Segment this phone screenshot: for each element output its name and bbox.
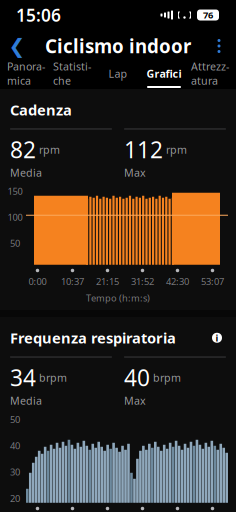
button[interactable]: Informazioni [208, 329, 226, 347]
button[interactable]: Lap [95, 63, 141, 88]
staticText: 40 [10, 439, 20, 452]
staticText: 150 [7, 185, 22, 197]
staticText: ❮ [8, 35, 25, 57]
staticText: Statistiche [53, 59, 91, 88]
staticText: Media [10, 166, 42, 180]
staticText: 100 [7, 211, 22, 223]
button[interactable]: Panoramica [3, 63, 49, 88]
staticText: Media [10, 394, 42, 408]
staticText: 21:15 [96, 275, 119, 288]
staticText: 50 [10, 413, 20, 425]
button[interactable]: Indietro [0, 30, 34, 62]
button[interactable]: Grafici [141, 63, 187, 88]
staticText: Panoramica [7, 59, 45, 88]
staticText: Max [124, 394, 146, 408]
staticText: brpm [153, 370, 181, 385]
staticText: rpm [166, 142, 187, 157]
staticText: rpm [39, 142, 60, 157]
staticText: 30 [10, 466, 20, 478]
button[interactable]: Attrezzatura [187, 63, 233, 88]
staticText: Max [124, 166, 146, 180]
staticText: i [215, 332, 218, 344]
staticText: 76 [203, 9, 213, 21]
staticText: Attrezzatura [191, 59, 229, 88]
staticText: 112 [124, 134, 163, 165]
staticText: brpm [39, 370, 67, 385]
staticText: 31:52 [131, 275, 154, 288]
staticText: 34 [10, 362, 36, 393]
button[interactable]: Statistiche [49, 63, 95, 88]
staticText: 82 [10, 134, 36, 165]
staticText: Ciclismo indoor [45, 34, 191, 58]
staticText: 10:37 [61, 275, 84, 288]
staticText: 20 [10, 492, 20, 504]
staticText: Frequenza respiratoria [10, 328, 176, 347]
staticText: 0:00 [28, 275, 46, 288]
staticText: 40 [124, 362, 150, 393]
button[interactable]: Altre opzioni [202, 30, 236, 62]
staticText: Grafici [146, 66, 181, 81]
staticText: 42:30 [166, 275, 189, 288]
staticText: Cadenza [10, 100, 72, 119]
staticText: 15:06 [16, 3, 61, 26]
staticText: 53:07 [201, 275, 224, 288]
staticText: Lap [108, 66, 127, 81]
staticText: 50 [10, 237, 20, 249]
staticText: Tempo (h:m:s) [86, 292, 150, 304]
